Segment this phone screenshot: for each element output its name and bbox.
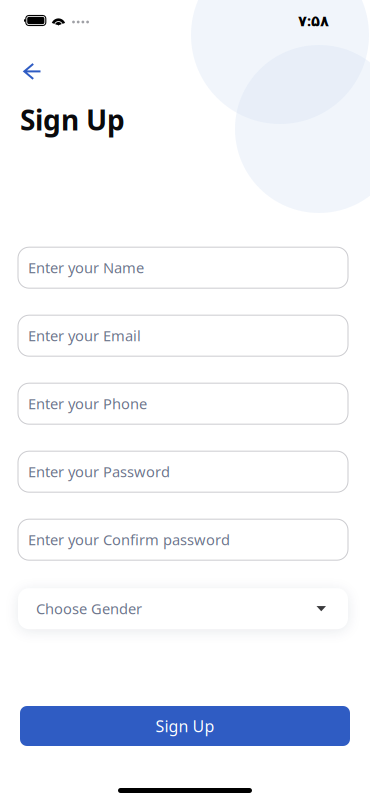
staticText: Sign Up — [155, 715, 214, 737]
staticText: Enter your Email — [28, 326, 141, 345]
button[interactable]: Enter your Password — [18, 451, 348, 492]
button[interactable]: Choose Gender — [18, 588, 348, 629]
button[interactable]: Enter your Name — [18, 247, 348, 288]
staticText: Enter your Phone — [28, 394, 147, 413]
staticText: Sign Up — [20, 101, 125, 138]
button[interactable]: Enter your Email — [18, 315, 348, 356]
button[interactable]: Back — [0, 59, 53, 84]
staticText: Choose Gender — [36, 599, 142, 618]
staticText: Enter your Confirm password — [28, 530, 230, 549]
staticText: ۷:۵۸ — [298, 11, 329, 30]
button[interactable]: Enter your Confirm password — [18, 519, 348, 560]
button[interactable]: Sign Up — [20, 706, 350, 746]
staticText: Enter your Name — [28, 258, 144, 277]
staticText: Enter your Password — [28, 462, 170, 481]
button[interactable]: Enter your Phone — [18, 383, 348, 424]
